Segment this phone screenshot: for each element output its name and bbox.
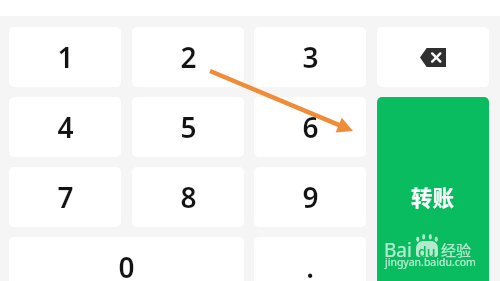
- staticText: du: [418, 242, 436, 257]
- button[interactable]: 5: [132, 97, 244, 157]
- button[interactable]: 3: [254, 27, 366, 87]
- button[interactable]: 6: [254, 97, 366, 157]
- staticText: 4: [57, 108, 74, 146]
- button[interactable]: 9: [254, 167, 366, 227]
- button[interactable]: 7: [9, 167, 121, 227]
- button[interactable]: 转账: [377, 97, 489, 281]
- staticText: 6: [302, 108, 319, 146]
- button[interactable]: .: [254, 237, 366, 281]
- staticText: Bai: [384, 237, 412, 263]
- button[interactable]: 1: [9, 27, 121, 87]
- staticText: .: [306, 248, 314, 281]
- staticText: jingyan.baidu.com: [385, 255, 476, 269]
- button[interactable]: Delete: [377, 27, 489, 87]
- button[interactable]: 4: [9, 97, 121, 157]
- button[interactable]: 8: [132, 167, 244, 227]
- staticText: 7: [57, 178, 74, 216]
- button[interactable]: 0: [9, 237, 244, 281]
- staticText: 3: [302, 38, 319, 76]
- button[interactable]: 2: [132, 27, 244, 87]
- staticText: 1: [57, 38, 74, 76]
- staticText: 5: [180, 108, 197, 146]
- staticText: 转账: [411, 181, 455, 212]
- staticText: 经验: [441, 239, 472, 261]
- staticText: 0: [118, 248, 135, 281]
- staticText: 9: [302, 178, 319, 216]
- staticText: 2: [180, 38, 197, 76]
- staticText: 8: [180, 178, 197, 216]
